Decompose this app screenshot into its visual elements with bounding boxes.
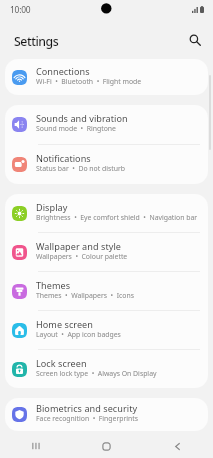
button[interactable]: Home (71, 434, 142, 458)
staticText: 10:00 (10, 4, 31, 15)
button[interactable]: Display (5, 194, 208, 232)
staticText: Home screen (36, 318, 93, 330)
button[interactable]: Recent apps (0, 434, 71, 458)
button[interactable]: Search (186, 31, 206, 51)
staticText: Screen lock type • Always On Display (36, 369, 157, 378)
button[interactable]: Themes (5, 272, 208, 310)
button[interactable]: Back (142, 434, 213, 458)
staticText: Lock screen (36, 357, 87, 369)
staticText: Biometrics and security (36, 402, 138, 414)
button[interactable]: Notifications (5, 145, 208, 184)
button[interactable]: Wallpaper and style (5, 233, 208, 271)
button[interactable]: Lock screen (5, 350, 208, 388)
staticText: Themes (36, 279, 71, 291)
staticText: Face recognition • Fingerprints (36, 414, 139, 423)
staticText: Sound mode • Ringtone (36, 124, 116, 133)
staticText: Display (36, 201, 68, 213)
staticText: Status bar • Do not disturb (36, 164, 125, 173)
staticText: Sounds and vibration (36, 112, 128, 124)
staticText: Notifications (36, 152, 91, 164)
staticText: Settings (14, 33, 59, 50)
staticText: Layout • App icon badges (36, 330, 121, 339)
staticText: Brightness • Eye comfort shield • Naviga… (36, 213, 198, 222)
button[interactable]: Sounds and vibration (5, 105, 208, 144)
staticText: Themes • Wallpapers • Icons (36, 291, 134, 300)
staticText: Wallpaper and style (36, 240, 121, 252)
button[interactable]: Home screen (5, 311, 208, 349)
button[interactable]: Biometrics and security (5, 398, 208, 431)
button[interactable]: Connections (5, 59, 208, 95)
staticText: Wi-Fi • Bluetooth • Flight mode (36, 77, 142, 86)
staticText: Wallpapers • Colour palette (36, 252, 128, 261)
staticText: Connections (36, 65, 90, 77)
